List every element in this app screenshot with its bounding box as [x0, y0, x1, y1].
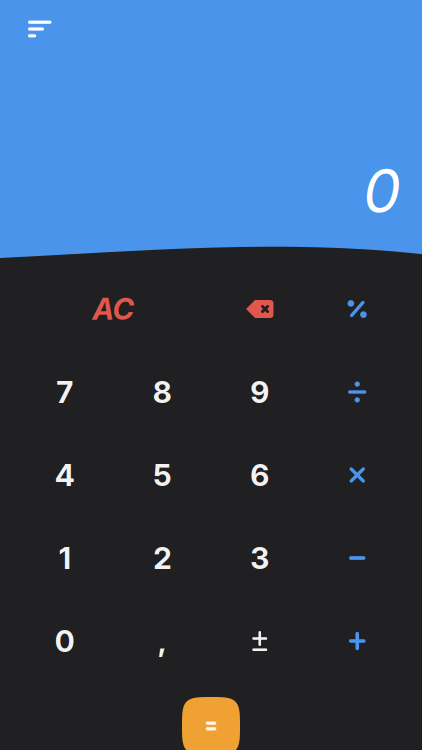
staticText: 5 — [153, 457, 171, 493]
button[interactable]: 9 — [211, 350, 308, 433]
button[interactable]: Equals — [182, 697, 240, 750]
button[interactable]: Multiply — [308, 433, 406, 516]
button[interactable]: Plus minus — [211, 599, 308, 682]
staticText: AC — [92, 291, 134, 327]
button[interactable]: Plus — [308, 599, 406, 682]
button[interactable]: 1 — [16, 516, 113, 599]
button[interactable]: AC — [16, 267, 211, 350]
staticText: 3 — [250, 540, 269, 576]
button[interactable]: Menu — [0, 0, 72, 58]
button[interactable]: 3 — [211, 516, 308, 599]
staticText: 0 — [363, 155, 401, 227]
staticText: 0 — [55, 623, 75, 659]
staticText: 7 — [56, 374, 73, 410]
staticText: 8 — [153, 374, 172, 410]
button[interactable]: Minus — [308, 516, 406, 599]
button[interactable]: 8 — [113, 350, 211, 433]
button[interactable]: Divide — [308, 350, 406, 433]
button[interactable]: 0 — [16, 599, 113, 682]
staticText: 6 — [250, 457, 269, 493]
button[interactable]: , — [113, 599, 211, 682]
button[interactable]: Percent — [308, 267, 406, 350]
staticText: 4 — [55, 457, 75, 493]
button[interactable]: 2 — [113, 516, 211, 599]
staticText: 9 — [250, 374, 269, 410]
button[interactable]: 5 — [113, 433, 211, 516]
staticText: 2 — [153, 540, 171, 576]
button[interactable]: 4 — [16, 433, 113, 516]
button[interactable]: Delete — [211, 267, 308, 350]
staticText: , — [158, 623, 167, 659]
button[interactable]: 7 — [16, 350, 113, 433]
button[interactable]: 6 — [211, 433, 308, 516]
staticText: 1 — [59, 540, 71, 576]
